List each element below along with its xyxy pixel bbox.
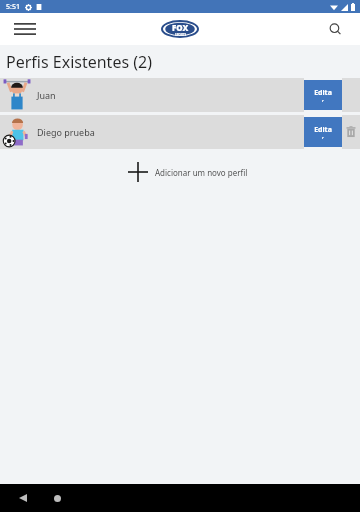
button[interactable]: Adicionar um novo perfil <box>0 157 360 187</box>
staticText: r <box>322 135 324 140</box>
staticText: Adicionar um novo perfil <box>155 167 248 178</box>
button[interactable]: Juan <box>0 78 304 112</box>
button[interactable]: Search <box>320 14 350 44</box>
button[interactable]: Edita <box>304 117 342 147</box>
staticText: 5:51 <box>6 2 20 12</box>
button[interactable]: Back <box>12 487 34 509</box>
button[interactable]: Home <box>46 487 68 509</box>
staticText: r <box>322 98 324 103</box>
staticText: Edita <box>314 125 332 135</box>
staticText: SPORTS <box>175 33 187 37</box>
staticText: Diego prueba <box>37 126 95 138</box>
button[interactable]: Delete <box>342 115 360 149</box>
staticText: FOX <box>172 22 189 33</box>
button[interactable]: Fox Sports <box>162 19 198 39</box>
staticText: Edita <box>314 88 332 98</box>
staticText: Juan <box>37 89 56 101</box>
button[interactable]: Menu <box>8 13 42 45</box>
staticText: Perfis Existentes (2) <box>6 51 152 73</box>
button[interactable]: Edita <box>304 80 342 110</box>
button[interactable]: Diego prueba <box>0 115 304 149</box>
